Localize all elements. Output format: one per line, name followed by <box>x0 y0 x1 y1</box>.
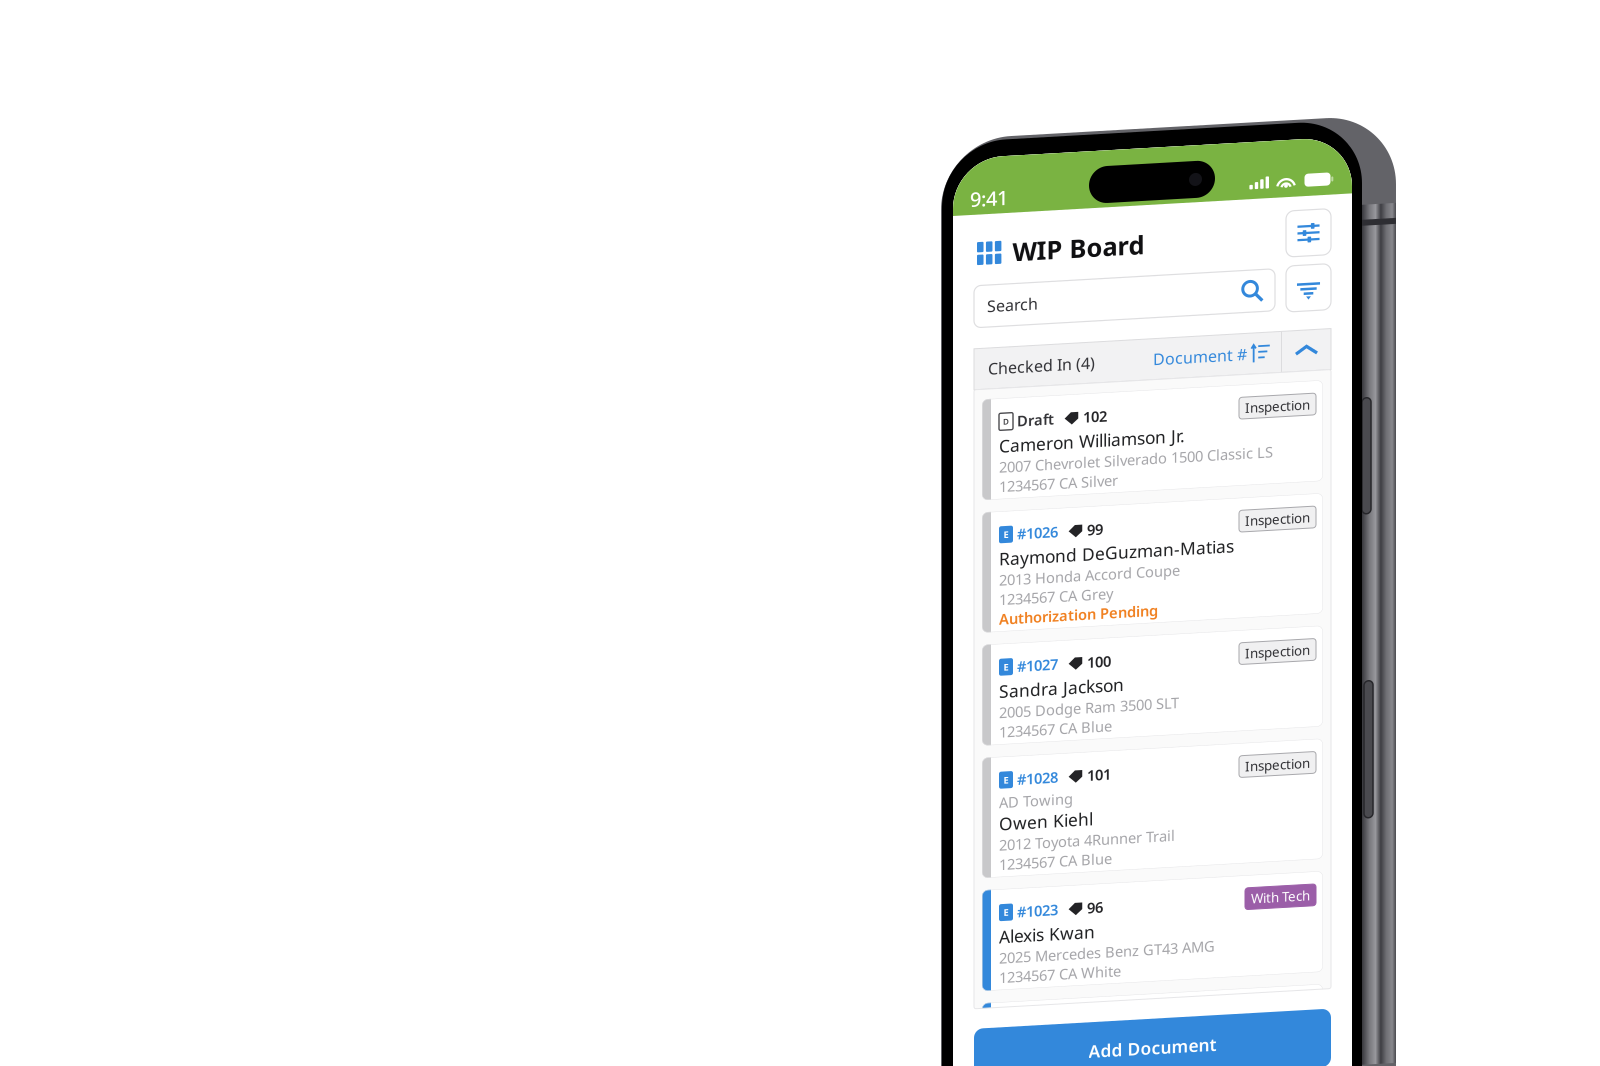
staticText: Authorization Pending <box>999 612 1158 631</box>
staticText: 101 <box>1083 773 1111 793</box>
button[interactable]: D <box>982 401 1323 502</box>
staticText: 2012 Toyota 4Runner Trail <box>999 838 1175 857</box>
staticText: Document # <box>1153 360 1247 381</box>
staticText: E <box>1003 777 1008 789</box>
button[interactable]: E <box>982 514 1323 634</box>
staticText: Jordan Blake <box>999 1041 1102 1064</box>
staticText: 2007 Chevrolet Silverado 1500 Classic LS <box>999 460 1273 479</box>
staticText: 102 <box>1079 415 1107 434</box>
button[interactable]: E <box>982 759 1323 880</box>
staticText: D <box>1003 419 1009 430</box>
staticText: Inspection <box>1245 661 1310 679</box>
staticText: E <box>1003 531 1008 544</box>
staticText: 100 <box>1083 660 1111 680</box>
staticText: AD Towing <box>999 795 1073 815</box>
staticText: #1028 <box>1013 773 1058 793</box>
staticText: 1234567 CA Blue <box>999 725 1112 744</box>
staticText: 95 <box>1083 1019 1103 1038</box>
staticText: 2005 Dodge Ram 3500 SLT <box>999 705 1179 725</box>
staticText: With Tech <box>1251 906 1310 924</box>
staticText: WIP Board <box>1012 238 1144 272</box>
staticText: #1026 <box>1013 528 1058 547</box>
staticText: E <box>1003 909 1008 921</box>
staticText: Raymond DeGuzman-Matias <box>999 550 1234 573</box>
button[interactable]: Display options <box>1286 230 1331 276</box>
staticText: 9:41 <box>970 187 1008 214</box>
staticText: Inspection <box>1245 416 1310 433</box>
staticText: Inspection <box>1245 529 1310 546</box>
staticText: Checked In (4) <box>988 360 1095 381</box>
staticText: E <box>1003 664 1008 676</box>
staticText: #1023 <box>1013 906 1058 925</box>
staticText: 1234567 CA Silver <box>999 479 1118 499</box>
staticText: Search <box>987 297 1038 319</box>
staticText: 96 <box>1083 906 1103 925</box>
button[interactable]: Document # <box>1153 350 1281 391</box>
button[interactable]: Collapse section <box>1282 350 1331 391</box>
button[interactable]: E <box>982 646 1323 747</box>
staticText: Sandra Jackson <box>999 682 1124 705</box>
staticText: Inspection <box>1245 774 1310 792</box>
staticText: Draft <box>1013 415 1054 434</box>
staticText: 2013 Honda Accord Coupe <box>999 573 1180 592</box>
staticText: Alexis Kwan <box>999 928 1095 951</box>
button[interactable]: Filter <box>1286 285 1331 331</box>
button[interactable]: E <box>982 1005 1323 1066</box>
staticText: E <box>1003 1022 1008 1034</box>
staticText: 1234567 CA Grey <box>999 592 1113 612</box>
staticText: 2025 Mercedes Benz GT43 AMG <box>999 951 1215 970</box>
staticText: #1027 <box>1013 660 1058 680</box>
staticText: #1022 <box>1013 1019 1058 1038</box>
button[interactable]: E <box>982 892 1323 993</box>
staticText: 1234567 CA White <box>999 970 1121 990</box>
staticText: Owen Kiehl <box>999 815 1093 838</box>
staticText: 99 <box>1083 528 1103 547</box>
staticText: Cameron Williamson Jr. <box>999 437 1185 460</box>
staticText: 1234567 CA Blue <box>999 857 1112 877</box>
staticText: Add Document <box>1088 1047 1216 1066</box>
button[interactable]: Add Document <box>974 1030 1331 1066</box>
